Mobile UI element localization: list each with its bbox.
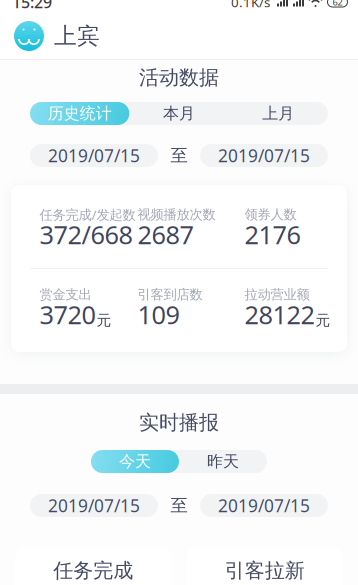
staticText: 0.1K/s [231, 0, 270, 11]
button[interactable]: 2019/07/15 [200, 144, 328, 167]
staticText: 2176 [244, 218, 300, 251]
staticText: 109 [137, 298, 179, 331]
button[interactable]: 今天 [91, 450, 179, 473]
button[interactable]: 引客拉新 [186, 547, 343, 585]
button[interactable]: 历史统计 [30, 102, 129, 125]
button[interactable]: 2019/07/15 [30, 494, 158, 517]
staticText: 任务完成/发起数 [39, 206, 135, 223]
staticText: 3720 [39, 298, 95, 331]
staticText: 元 [96, 311, 111, 329]
staticText: 引客到店数 [137, 286, 202, 303]
staticText: 2687 [137, 218, 193, 251]
staticText: 上宾 [54, 22, 100, 50]
staticText: 拉动营业额 [244, 286, 309, 303]
staticText: 今天 [119, 452, 151, 471]
staticText: 上月 [262, 104, 294, 123]
staticText: 2019/07/15 [218, 144, 310, 167]
button[interactable]: 2019/07/15 [30, 144, 158, 167]
staticText: 领券人数 [244, 206, 296, 223]
staticText: 实时播报 [139, 410, 219, 435]
staticText: 2019/07/15 [48, 494, 140, 517]
staticText: 2019/07/15 [48, 144, 140, 167]
staticText: 2019/07/15 [218, 494, 310, 517]
staticText: 引客拉新 [225, 558, 305, 583]
staticText: 62 [332, 0, 342, 8]
button[interactable]: 2019/07/15 [200, 494, 328, 517]
staticText: 本月 [163, 104, 195, 123]
staticText: 视频播放次数 [137, 206, 215, 223]
staticText: 任务完成 [53, 558, 133, 583]
staticText: 372/668 [39, 218, 132, 251]
staticText: 元 [315, 311, 330, 329]
staticText: 15:29 [12, 0, 52, 13]
staticText: 至 [170, 145, 187, 166]
staticText: 活动数据 [139, 65, 219, 90]
staticText: 历史统计 [48, 104, 112, 123]
button[interactable]: 昨天 [179, 450, 267, 473]
staticText: 至 [170, 495, 187, 516]
button[interactable]: 本月 [129, 102, 229, 125]
button[interactable]: 上月 [229, 102, 328, 125]
staticText: 昨天 [207, 452, 239, 471]
staticText: 赏金支出 [39, 286, 91, 303]
staticText: 28122 [244, 298, 314, 331]
button[interactable]: 任务完成 [15, 547, 171, 585]
